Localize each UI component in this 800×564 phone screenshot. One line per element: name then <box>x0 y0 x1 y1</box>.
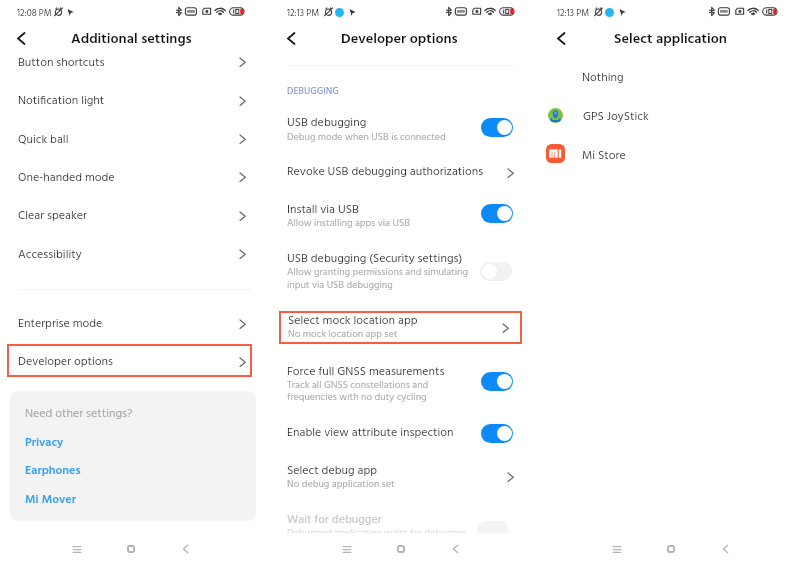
staticText: 12:08 PM <box>17 6 52 21</box>
staticText: Earphones <box>25 461 81 480</box>
staticText: Quick ball <box>18 130 69 149</box>
button[interactable] <box>270 196 537 232</box>
button[interactable] <box>540 140 800 168</box>
button[interactable] <box>270 110 537 146</box>
staticText: Developer options <box>341 28 458 51</box>
staticText: 12:13 PM <box>287 6 320 21</box>
staticText: Clear speaker <box>18 206 87 225</box>
staticText: 12:13 PM <box>557 6 590 21</box>
button[interactable] <box>0 83 267 117</box>
staticText: Select mock location app <box>288 311 418 330</box>
button[interactable] <box>279 311 522 344</box>
button[interactable]: Back <box>554 29 569 44</box>
button[interactable]: Back <box>715 539 735 559</box>
button[interactable] <box>270 245 537 293</box>
staticText: Install via USB <box>287 200 359 219</box>
staticText: No debug application set <box>287 476 395 492</box>
staticText: USB debugging <box>287 113 367 132</box>
staticText: DEBUGGING <box>287 84 339 99</box>
button[interactable]: Back <box>445 539 465 559</box>
button[interactable] <box>0 122 267 156</box>
button[interactable]: Enabled <box>481 372 513 391</box>
staticText: Button shortcuts <box>18 53 105 72</box>
staticText: Debugged application waits for debugger <box>287 525 466 541</box>
staticText: Privacy <box>25 433 64 452</box>
button[interactable] <box>540 64 800 92</box>
button[interactable] <box>7 344 252 377</box>
button[interactable] <box>0 303 267 335</box>
button[interactable] <box>0 160 267 194</box>
button[interactable] <box>0 45 267 79</box>
button[interactable]: Enabled <box>481 118 513 137</box>
button[interactable]: Home <box>661 539 681 559</box>
button[interactable]: Back <box>284 29 299 44</box>
staticText: Developer options <box>18 352 113 371</box>
button[interactable]: Back <box>14 29 29 44</box>
staticText: Enterprise mode <box>18 314 103 333</box>
button[interactable]: Enabled <box>481 204 513 223</box>
staticText: Revoke USB debugging authorizations <box>287 162 484 181</box>
button[interactable] <box>540 102 800 130</box>
button[interactable] <box>22 462 94 482</box>
staticText: Allow granting permissions and simulatin… <box>287 264 468 280</box>
button[interactable]: Recent apps <box>67 539 87 559</box>
button[interactable]: Home <box>391 539 411 559</box>
staticText: Additional settings <box>71 28 192 51</box>
button[interactable] <box>270 457 537 495</box>
staticText: One-handed mode <box>18 168 115 187</box>
staticText: frequencies with no duty cycling <box>287 389 427 405</box>
button[interactable]: Recent apps <box>337 539 357 559</box>
button[interactable] <box>0 237 267 271</box>
button[interactable] <box>270 160 537 188</box>
button[interactable] <box>270 419 537 449</box>
staticText: Select application <box>614 28 727 51</box>
staticText: Mi Store <box>582 146 626 165</box>
button[interactable]: Recent apps <box>607 539 627 559</box>
staticText: No mock location app set <box>288 326 398 342</box>
staticText: Debug mode when USB is connected <box>287 129 446 145</box>
staticText: USB debugging (Security settings) <box>287 249 463 268</box>
staticText: Notification light <box>18 91 105 110</box>
staticText: Need other settings? <box>25 404 133 423</box>
button[interactable] <box>22 490 94 510</box>
staticText: Accessibility <box>18 245 82 264</box>
button[interactable] <box>0 198 267 232</box>
button[interactable] <box>22 434 94 454</box>
staticText: Wait for debugger <box>287 510 382 529</box>
button[interactable]: Enabled <box>481 424 513 443</box>
staticText: Force full GNSS measurements <box>287 362 445 381</box>
staticText: Enable view attribute inspection <box>287 423 454 442</box>
staticText: Mi Mover <box>25 490 76 509</box>
staticText: input via USB debugging <box>287 277 393 293</box>
staticText: Select debug app <box>287 461 378 480</box>
staticText: GPS JoyStick <box>583 107 649 126</box>
staticText: Nothing <box>582 68 624 87</box>
staticText: Track all GNSS constellations and <box>287 377 429 393</box>
button[interactable] <box>270 358 537 406</box>
staticText: Allow installing apps via USB <box>287 215 410 231</box>
button[interactable]: Disabled <box>480 262 512 281</box>
button[interactable]: Back <box>175 539 195 559</box>
button[interactable]: Home <box>121 539 141 559</box>
